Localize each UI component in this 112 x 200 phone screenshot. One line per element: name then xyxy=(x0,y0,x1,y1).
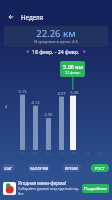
button[interactable]: РОСТ xyxy=(91,164,109,172)
button[interactable]: Previous week xyxy=(23,47,32,56)
staticText: Чт xyxy=(56,151,67,156)
staticText: 4.97 xyxy=(56,91,67,96)
staticText: 4 xyxy=(5,104,8,109)
button[interactable]: КАЛОРИИ xyxy=(28,164,50,172)
staticText: Ср xyxy=(43,151,54,156)
staticText: Собирайте урожай ягод круглый год. Бес xyxy=(18,186,81,196)
staticText: Пн xyxy=(17,151,28,156)
staticText: Вс xyxy=(95,151,106,156)
staticText: 4.12 xyxy=(30,100,41,105)
staticText: Сб xyxy=(82,151,93,156)
staticText: 18 февр. - 24 февр. xyxy=(32,48,80,55)
button[interactable]: Next week xyxy=(80,47,89,56)
staticText: Подробнее xyxy=(84,186,107,192)
staticText: Ягодная мини-ферма! xyxy=(18,180,67,186)
staticText: РОСТ xyxy=(95,166,105,171)
button[interactable]: Back xyxy=(4,10,17,23)
staticText: Пт xyxy=(69,151,80,156)
staticText: Неделя xyxy=(21,13,44,21)
staticText: 5.15 xyxy=(17,89,28,94)
staticText: 22.26 км xyxy=(4,27,108,40)
staticText: ШАГ xyxy=(4,166,13,171)
button[interactable]: Ягодная мини-ферма! xyxy=(0,176,112,200)
staticText: ВРЕМЯ xyxy=(65,166,78,171)
staticText: 5.06 xyxy=(69,90,80,95)
staticText: В среднем в день: 4.5 xyxy=(4,39,108,45)
button[interactable]: ВРЕМЯ xyxy=(62,164,81,172)
button[interactable]: 5.06 км xyxy=(60,61,85,77)
button[interactable]: Подробнее xyxy=(82,184,109,193)
staticText: Вт xyxy=(30,151,41,156)
button[interactable]: ШАГ xyxy=(2,164,15,172)
staticText: КАЛОРИИ xyxy=(30,166,49,171)
staticText: 22 февр. xyxy=(65,70,81,75)
staticText: 5.06 км xyxy=(63,63,83,70)
staticText: 2.96 xyxy=(43,112,54,117)
